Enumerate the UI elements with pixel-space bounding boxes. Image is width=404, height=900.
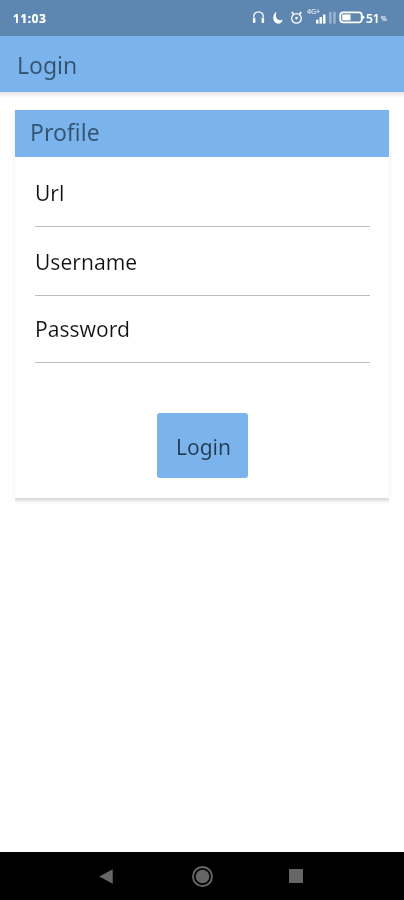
staticText: 11:03 (13, 11, 47, 27)
staticText: Password (35, 315, 130, 344)
staticText: Login (17, 49, 78, 80)
staticText: Login (176, 433, 232, 462)
staticText: Url (35, 179, 65, 208)
button[interactable]: Home (178, 852, 226, 900)
button[interactable]: Username (35, 236, 370, 296)
button[interactable]: Back (82, 852, 130, 900)
button[interactable]: Password (35, 303, 370, 363)
staticText: % (381, 14, 387, 24)
button[interactable]: Url (35, 167, 370, 227)
staticText: Username (35, 248, 138, 277)
button[interactable]: Recent apps (272, 852, 320, 900)
staticText: Profile (30, 116, 100, 147)
staticText: 4G+ (307, 7, 321, 17)
button[interactable]: Login (157, 413, 248, 478)
staticText: 51 (366, 10, 380, 26)
